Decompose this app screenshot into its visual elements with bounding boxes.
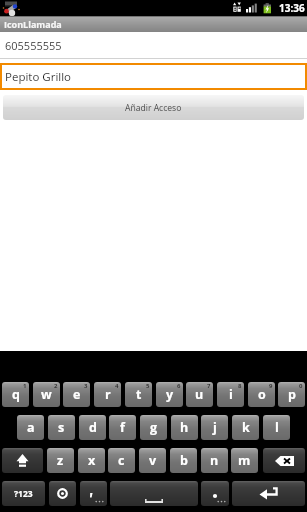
button[interactable]: g [140, 415, 167, 440]
staticText: h [180, 419, 189, 436]
staticText: 5 [146, 382, 150, 390]
button[interactable]: IconLlamada [0, 16, 307, 32]
button[interactable]: v [139, 448, 166, 473]
staticText: q [12, 386, 20, 403]
button[interactable]: y [156, 382, 183, 407]
staticText: ?123 [14, 488, 33, 500]
button[interactable]: u [186, 382, 213, 407]
button[interactable]: c [108, 448, 135, 473]
staticText: b [180, 452, 188, 469]
staticText: z [57, 452, 64, 469]
button[interactable]: m [231, 448, 258, 473]
button[interactable]: e [63, 382, 90, 407]
button[interactable]: n [201, 448, 228, 473]
staticText: m [238, 452, 251, 469]
button[interactable]: i [217, 382, 244, 407]
button[interactable]: j [201, 415, 228, 440]
staticText: v [149, 452, 157, 469]
staticText: f [120, 419, 125, 436]
staticText: e [73, 386, 81, 403]
button[interactable]: d [79, 415, 106, 440]
button[interactable]: Voice input [49, 481, 76, 506]
button[interactable]: k [232, 415, 259, 440]
staticText: n [210, 452, 219, 469]
other: Notification [2, 0, 22, 16]
staticText: u [195, 386, 204, 403]
button[interactable]: Backspace [263, 448, 305, 473]
staticText: w [41, 386, 52, 403]
staticText: 4 [115, 382, 119, 390]
staticText: o [258, 386, 266, 403]
staticText: 1 [23, 382, 27, 390]
button[interactable]: z [47, 448, 74, 473]
button[interactable]: 605555555 [0, 32, 307, 59]
staticText: y [166, 386, 174, 403]
staticText: 3 [84, 382, 88, 390]
button[interactable]: Shift [2, 448, 43, 473]
button[interactable]: l [263, 415, 290, 440]
staticText: 9 [269, 382, 273, 390]
staticText: 13:36 [279, 1, 305, 15]
staticText: 2 [54, 382, 58, 390]
button[interactable]: Añadir Acceso [3, 95, 304, 120]
staticText: IconLlamada [4, 18, 62, 30]
staticText: x [88, 452, 96, 469]
button[interactable]: Pepito Grillo [0, 63, 307, 90]
staticText: t [136, 386, 142, 403]
button[interactable]: a [17, 415, 44, 440]
staticText: r [105, 386, 111, 403]
button[interactable]: w [33, 382, 60, 407]
staticText: d [89, 419, 97, 436]
button[interactable]: s [48, 415, 75, 440]
button[interactable]: x [78, 448, 105, 473]
staticText: p [288, 386, 296, 403]
button[interactable]: b [170, 448, 197, 473]
staticText: 6 [177, 382, 181, 390]
staticText: k [242, 419, 250, 436]
staticText: l [275, 419, 279, 436]
button[interactable]: t [125, 382, 152, 407]
staticText: s [58, 419, 65, 436]
button[interactable]: q [2, 382, 29, 407]
button[interactable]: p [278, 382, 305, 407]
button[interactable] [80, 481, 107, 506]
staticText: 7 [207, 382, 211, 390]
button[interactable]: Space [110, 481, 198, 506]
staticText: i [229, 386, 233, 403]
staticText: 8 [238, 382, 242, 390]
staticText: 605555555 [5, 38, 62, 53]
button[interactable]: r [94, 382, 121, 407]
staticText: j [213, 419, 217, 436]
staticText: g [150, 419, 158, 436]
button[interactable] [201, 481, 229, 506]
button[interactable]: Enter [232, 481, 305, 506]
staticText: Pepito Grillo [5, 69, 72, 85]
staticText: a [27, 419, 35, 436]
button[interactable]: o [248, 382, 275, 407]
staticText: c [118, 452, 125, 469]
staticText: 0 [299, 382, 303, 390]
staticText: Añadir Acceso [125, 102, 182, 114]
button[interactable]: ?123 [2, 481, 45, 506]
button[interactable]: f [109, 415, 136, 440]
button[interactable]: h [171, 415, 198, 440]
